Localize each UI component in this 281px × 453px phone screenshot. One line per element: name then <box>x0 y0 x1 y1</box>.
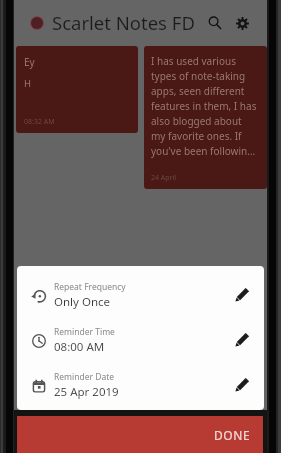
staticText: I has used various types of note-taking … <box>151 54 258 158</box>
staticText: Scarlet Notes FD <box>52 10 195 35</box>
button[interactable]: Search <box>203 11 227 35</box>
button[interactable]: DONE <box>17 416 263 453</box>
staticText: Only Once <box>54 294 111 310</box>
button[interactable]: Edit Repeat Frequency <box>230 282 254 306</box>
staticText: 08:00 AM <box>54 339 105 355</box>
button[interactable]: Edit Reminder Date <box>230 372 254 396</box>
button[interactable]: Reminder Time <box>17 318 264 363</box>
button[interactable]: Settings <box>230 11 254 35</box>
button[interactable]: Edit Reminder Time <box>230 327 254 351</box>
staticText: Ey <box>24 55 35 69</box>
button[interactable]: Reminder Date <box>17 363 264 408</box>
staticText: DONE <box>214 427 251 443</box>
staticText: 24 April <box>151 173 177 183</box>
button[interactable]: Repeat Frequency <box>17 273 264 318</box>
staticText: 08:32 AM <box>24 117 55 127</box>
staticText: 25 Apr 2019 <box>54 384 119 400</box>
staticText: H <box>24 77 32 90</box>
button[interactable]: I has used various types of note-taking … <box>144 46 267 189</box>
staticText: Repeat Frequency <box>54 281 126 293</box>
staticText: Reminder Date <box>54 371 115 383</box>
button[interactable]: Ey <box>16 46 138 133</box>
staticText: Reminder Time <box>54 326 115 338</box>
